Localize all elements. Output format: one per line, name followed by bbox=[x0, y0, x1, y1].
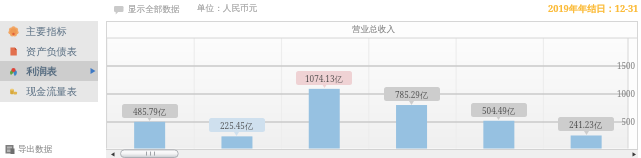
button[interactable]: 导出数据 bbox=[4, 143, 53, 155]
staticText: 785.29亿 bbox=[395, 89, 429, 100]
other: 显示全部数据 bbox=[113, 3, 124, 15]
staticText: 主要指标 bbox=[26, 25, 67, 38]
staticText: 504.49亿 bbox=[482, 105, 516, 116]
button[interactable]: 资产负债表 bbox=[0, 41, 98, 61]
staticText: 2019年年结日：12-31 bbox=[548, 2, 639, 15]
other: 导出数据 bbox=[4, 144, 15, 155]
staticText: 500 bbox=[621, 116, 635, 127]
button[interactable]: 水平滚动条 bbox=[106, 149, 638, 158]
button[interactable]: 显示全部数据 bbox=[113, 3, 180, 15]
button[interactable]: 主要指标 bbox=[0, 21, 98, 41]
staticText: 现金流量表 bbox=[26, 85, 77, 98]
staticText: 显示全部数据 bbox=[128, 4, 180, 15]
staticText: 导出数据 bbox=[18, 144, 53, 155]
staticText: 1074.13亿 bbox=[305, 73, 343, 84]
staticText: 225.45亿 bbox=[220, 120, 254, 131]
staticText: 单位：人民币元 bbox=[197, 3, 258, 14]
staticText: 资产负债表 bbox=[26, 45, 77, 58]
staticText: 营业总收入 bbox=[352, 24, 395, 35]
staticText: 1000 bbox=[617, 88, 635, 99]
button[interactable]: 现金流量表 bbox=[0, 81, 98, 101]
staticText: 485.79亿 bbox=[133, 106, 167, 117]
staticText: 1500 bbox=[617, 60, 635, 71]
button[interactable]: 利润表 bbox=[0, 61, 98, 81]
staticText: 利润表 bbox=[26, 65, 57, 78]
staticText: 241.23亿 bbox=[569, 119, 603, 130]
